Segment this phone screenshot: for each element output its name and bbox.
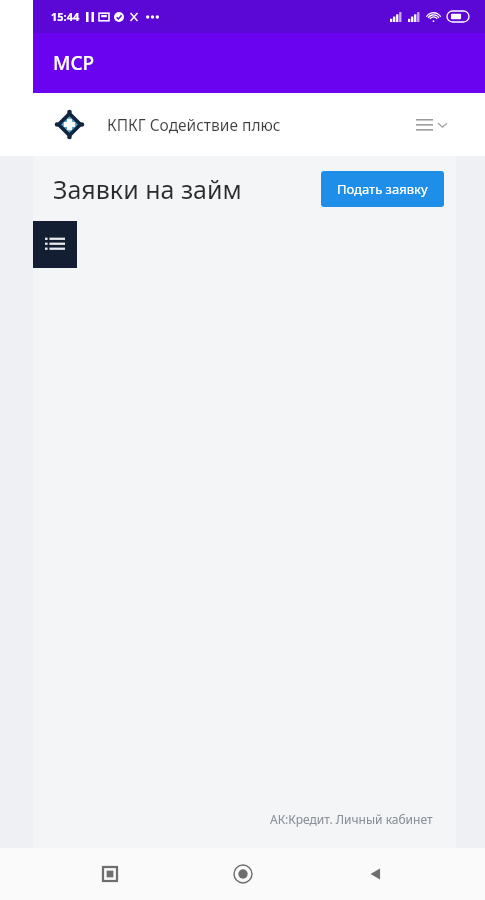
staticText: MCP (53, 50, 95, 76)
staticText: 15:44 (51, 9, 80, 24)
button[interactable]: Menu (410, 113, 453, 137)
staticText: КПКГ Содействие плюс (107, 114, 281, 135)
staticText: Подать заявку (337, 180, 428, 198)
button[interactable]: Подать заявку (321, 171, 444, 207)
button[interactable]: Home (220, 851, 266, 897)
button[interactable]: Back (352, 851, 398, 897)
staticText: Заявки на займ (53, 172, 242, 206)
button[interactable]: Recent apps (87, 851, 133, 897)
staticText: АК:Кредит. Личный кабинет (270, 811, 433, 827)
button[interactable]: List view (33, 221, 77, 268)
